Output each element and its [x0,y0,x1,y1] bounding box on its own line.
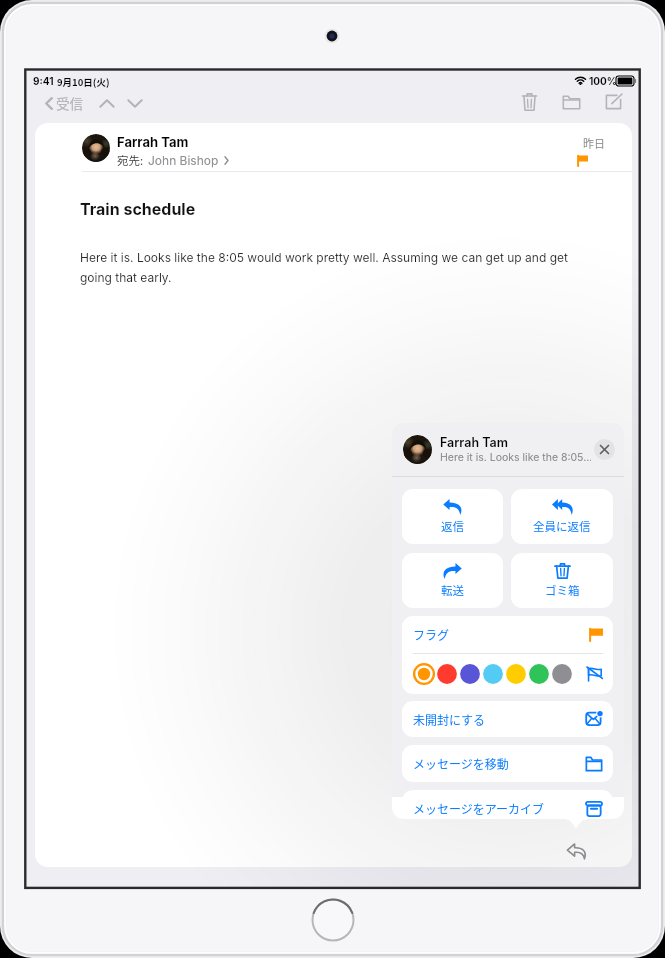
staticText: 宛先: [117,152,144,169]
button[interactable]: Reply [565,840,587,862]
button[interactable]: 受信 [42,90,86,116]
button[interactable]: フラグ [413,616,603,653]
button[interactable]: Previous message [94,90,120,116]
staticText: 9:41 [33,75,54,87]
staticText: Farrah Tam [440,435,508,450]
button[interactable]: Flag colour 3 [459,663,481,685]
staticText: 全員に返信 [533,518,591,535]
button[interactable]: メッセージを移動 [402,745,613,782]
button[interactable]: Flag colour 1 [413,663,435,685]
staticText: Train schedule [80,199,196,218]
staticText: John Bishop [148,153,219,168]
staticText: メッセージを移動 [413,755,509,772]
button[interactable]: 全員に返信 [511,489,613,544]
staticText: 100% [589,75,617,87]
button[interactable]: 返信 [402,489,503,544]
staticText: 転送 [441,582,464,599]
staticText: Farrah Tam [117,134,189,150]
button[interactable]: Farrah Tam [403,423,615,476]
staticText: 未開封にする [413,711,486,728]
staticText: Here it is. Looks like the 8:05… [440,451,591,464]
button[interactable]: Flag colour 6 [528,663,550,685]
staticText: 返信 [441,518,464,535]
staticText: 昨日 [583,135,605,151]
button[interactable]: Flag colour 7 [551,663,573,685]
button[interactable]: Close [594,439,615,460]
button[interactable]: Next message [122,90,148,116]
button[interactable]: ゴミ箱 [511,553,613,608]
button[interactable]: Flag colour 5 [505,663,527,685]
button[interactable]: Delete [514,87,544,117]
button[interactable]: Flag colour 2 [436,663,458,685]
button[interactable]: Flag colour 4 [482,663,504,685]
button[interactable]: メッセージをアーカイブ [402,790,613,827]
button[interactable]: Remove flag [585,665,603,683]
button[interactable]: Compose [598,87,628,117]
staticText: 受信 [56,93,83,113]
button[interactable]: Move to folder [556,87,586,117]
staticText: ゴミ箱 [545,582,580,599]
staticText: 9月10日(火) [57,75,110,89]
button[interactable]: 転送 [402,553,503,608]
staticText: フラグ [413,626,450,643]
staticText: メッセージをアーカイブ [413,800,545,817]
staticText: Here it is. Looks like the 8:05 would wo… [80,250,568,285]
button[interactable]: 未開封にする [402,701,613,737]
